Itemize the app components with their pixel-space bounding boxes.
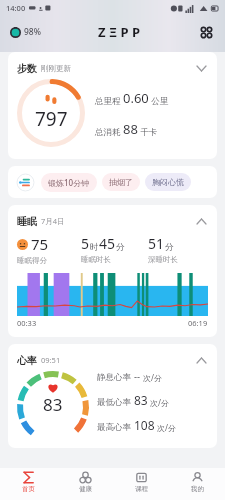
staticText: 00:33 bbox=[17, 318, 37, 328]
staticText: 0.60 bbox=[123, 89, 149, 107]
button[interactable]: 步数 bbox=[8, 52, 217, 159]
button[interactable]: 睡眠 bbox=[8, 205, 217, 337]
staticText: 5 bbox=[81, 234, 90, 253]
staticText: 797 bbox=[35, 106, 68, 132]
button[interactable]: Expand bbox=[194, 61, 208, 75]
staticText: 75 bbox=[31, 234, 49, 254]
staticText: Z Ξ P P bbox=[98, 23, 140, 41]
staticText: 千卡 bbox=[138, 126, 158, 138]
staticText: 步数 bbox=[17, 62, 37, 75]
staticText: 51 bbox=[148, 234, 165, 253]
staticText: 88 bbox=[123, 120, 138, 138]
staticText: -- bbox=[134, 370, 141, 383]
staticText: 静息心率 bbox=[97, 372, 131, 383]
staticText: 锻炼10分钟 bbox=[48, 177, 90, 188]
staticText: 06:19 bbox=[188, 318, 208, 328]
button[interactable]: 课程 bbox=[113, 468, 169, 500]
staticText: 次/分 bbox=[157, 422, 176, 433]
button[interactable]: 抽烟了 bbox=[102, 173, 140, 191]
staticText: 98% bbox=[24, 26, 41, 38]
staticText: 健康 bbox=[79, 485, 92, 493]
staticText: 胸闷心慌 bbox=[152, 177, 184, 187]
button[interactable]: 胸闷心慌 bbox=[145, 173, 191, 191]
staticText: 分 bbox=[165, 242, 174, 253]
staticText: 睡眠时长 bbox=[81, 255, 111, 264]
button[interactable]: 首页 bbox=[0, 468, 57, 500]
staticText: 首页 bbox=[22, 485, 35, 493]
staticText: 刚刚更新 bbox=[41, 64, 71, 73]
staticText: 最低心率 bbox=[97, 397, 131, 408]
staticText: 总消耗 bbox=[95, 126, 123, 138]
button[interactable]: 健康 bbox=[57, 468, 113, 500]
button[interactable]: 锻炼10分钟 bbox=[41, 173, 97, 192]
button[interactable]: 心率 bbox=[8, 344, 217, 448]
staticText: 次/分 bbox=[150, 397, 169, 408]
staticText: 课程 bbox=[135, 485, 148, 493]
staticText: 时 bbox=[90, 242, 99, 253]
staticText: 45 bbox=[99, 234, 116, 253]
staticText: 抽烟了 bbox=[109, 177, 133, 187]
staticText: 14:00 bbox=[6, 3, 26, 13]
staticText: 总里程 bbox=[95, 95, 123, 107]
staticText: 我的 bbox=[191, 485, 204, 493]
staticText: 分 bbox=[116, 242, 125, 253]
staticText: 心率 bbox=[17, 354, 37, 367]
staticText: 108 bbox=[134, 417, 155, 433]
button[interactable]: Collapse bbox=[194, 353, 208, 367]
button[interactable]: 98% bbox=[8, 24, 43, 40]
staticText: 7月4日 bbox=[41, 216, 65, 226]
staticText: 09:51 bbox=[41, 355, 61, 365]
button[interactable]: More apps bbox=[195, 21, 217, 43]
staticText: 83 bbox=[43, 393, 63, 416]
staticText: 次/分 bbox=[143, 372, 162, 383]
button[interactable]: Collapse bbox=[194, 214, 208, 228]
button[interactable]: Log entry bbox=[15, 172, 35, 192]
button[interactable]: 我的 bbox=[169, 468, 225, 500]
staticText: 83 bbox=[134, 392, 148, 408]
staticText: 睡眠得分 bbox=[17, 256, 47, 265]
staticText: 睡眠 bbox=[17, 215, 37, 228]
staticText: 公里 bbox=[149, 95, 169, 107]
staticText: 最高心率 bbox=[97, 422, 131, 433]
staticText: 深睡时长 bbox=[148, 255, 178, 264]
